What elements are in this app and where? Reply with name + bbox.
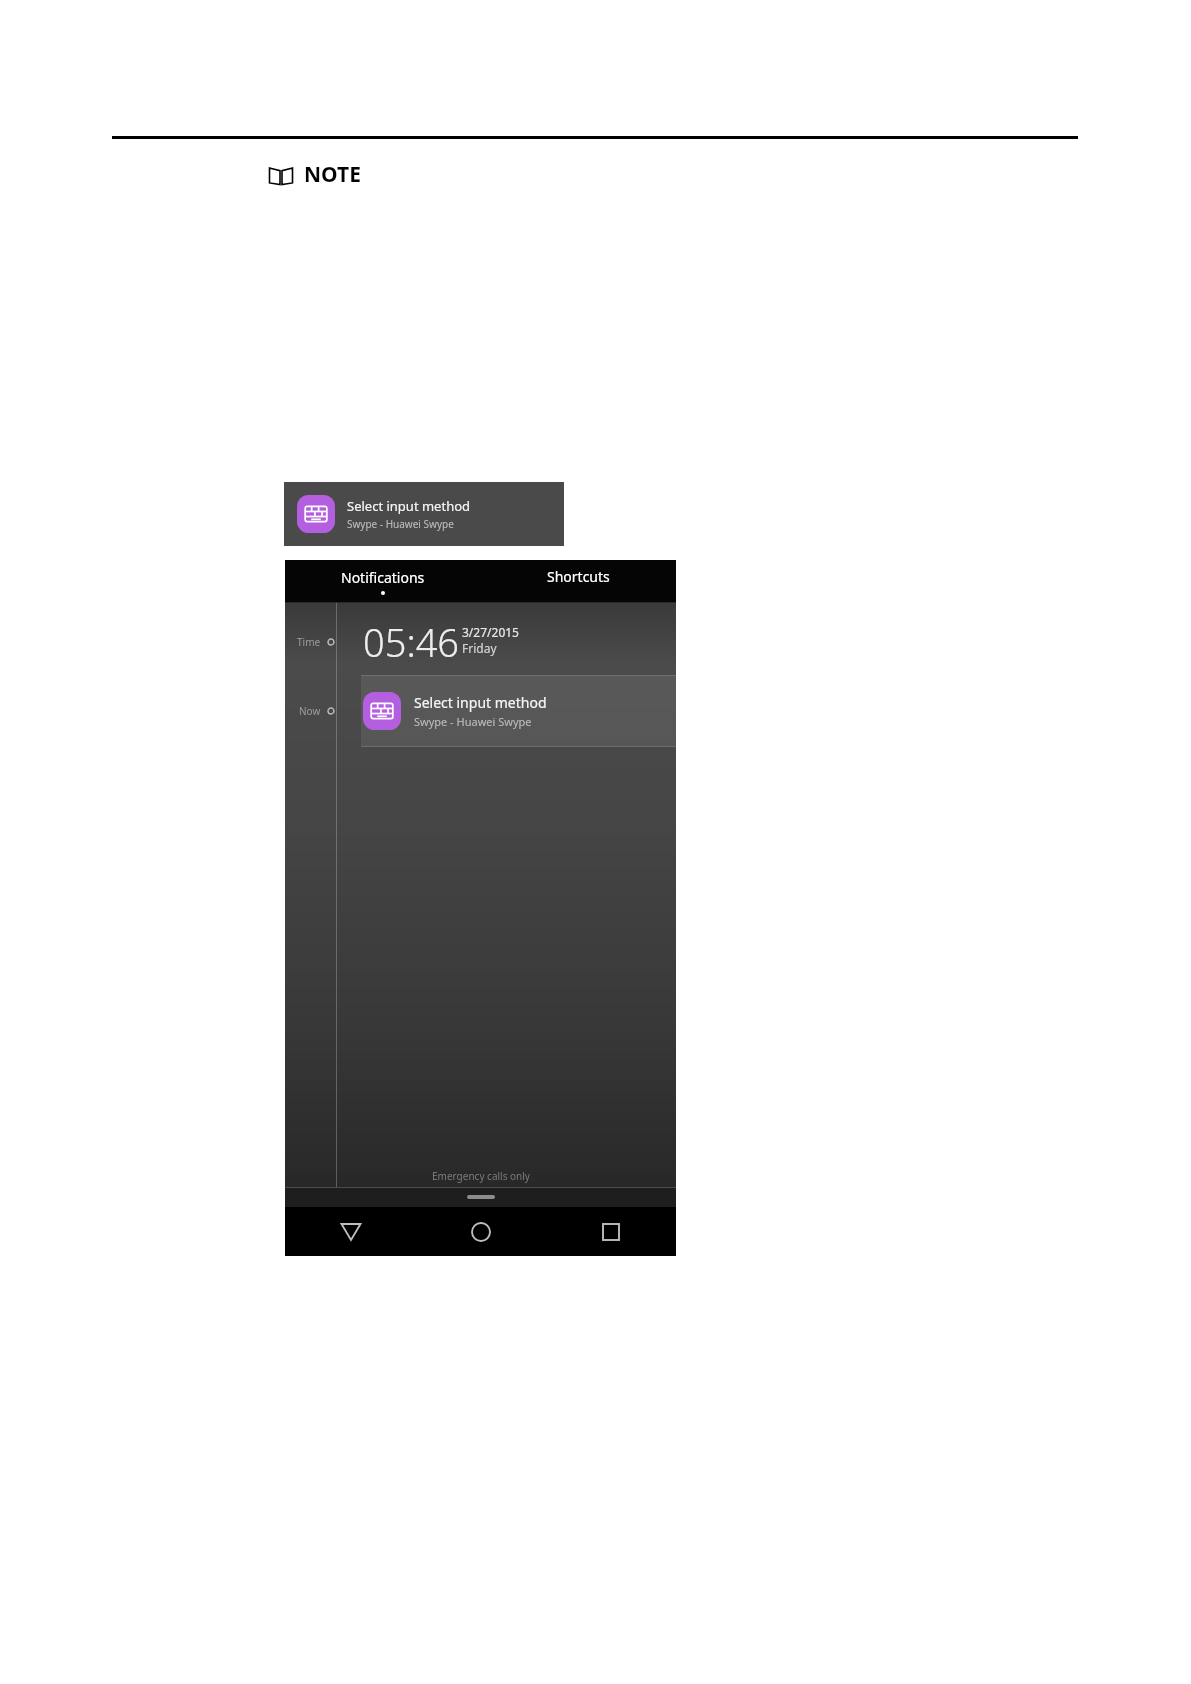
button[interactable]: Recents bbox=[546, 1207, 676, 1256]
staticText: 05:46 bbox=[363, 616, 460, 668]
button[interactable]: Back bbox=[285, 1207, 416, 1256]
staticText: 3/27/2015 bbox=[462, 624, 519, 640]
staticText: Swype - Huawei Swype bbox=[347, 517, 454, 531]
staticText: NOTE bbox=[304, 160, 361, 189]
button[interactable]: Notifications bbox=[285, 560, 480, 603]
button[interactable]: Shortcuts bbox=[480, 560, 676, 603]
button[interactable]: Home bbox=[416, 1207, 546, 1256]
staticText: Time bbox=[297, 635, 321, 649]
staticText: Swype - Huawei Swype bbox=[414, 714, 532, 729]
staticText: Notifications bbox=[341, 568, 425, 587]
staticText: Emergency calls only bbox=[432, 1169, 530, 1183]
staticText: Friday bbox=[462, 640, 497, 656]
button[interactable]: Select input method bbox=[361, 675, 752, 747]
staticText: Now bbox=[299, 704, 321, 718]
staticText: Select input method bbox=[414, 693, 547, 712]
button[interactable]: Select input method bbox=[284, 482, 564, 546]
staticText: Select input method bbox=[347, 497, 471, 515]
staticText: Shortcuts bbox=[547, 567, 610, 586]
